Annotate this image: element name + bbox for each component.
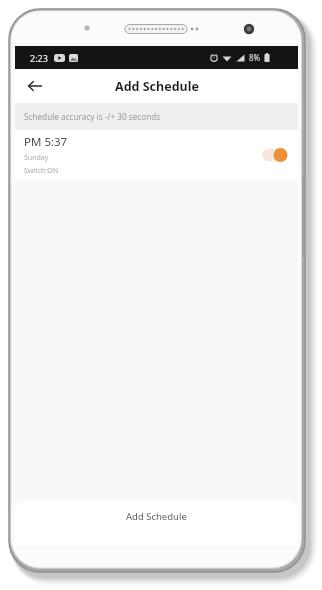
button[interactable] <box>262 148 288 162</box>
staticText: Add Schedule <box>115 78 199 95</box>
staticText: 2:23 <box>30 52 48 64</box>
staticText: PM 5:37 <box>24 134 68 150</box>
button[interactable]: PM 5:37 <box>15 130 298 180</box>
button[interactable]: Add Schedule <box>15 501 298 545</box>
staticText: Sunday <box>24 153 49 163</box>
staticText: Add Schedule <box>126 510 187 523</box>
staticText: Switch:ON <box>24 166 59 176</box>
button[interactable] <box>22 73 48 99</box>
staticText: 8% <box>249 52 261 63</box>
staticText: Schedule accuracy is -/+ 30 seconds <box>24 111 161 122</box>
